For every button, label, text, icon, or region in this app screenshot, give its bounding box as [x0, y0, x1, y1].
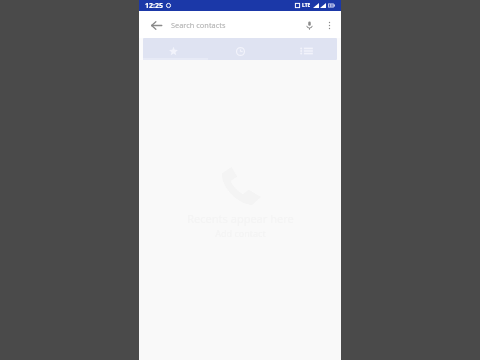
staticText: 12:25 — [145, 1, 163, 11]
button[interactable]: Speed dial — [139, 38, 207, 60]
button[interactable]: Contacts — [274, 38, 341, 60]
staticText: Search contacts — [171, 20, 226, 30]
staticText: LTE — [302, 2, 311, 9]
button[interactable]: Voice search — [302, 18, 316, 32]
button[interactable]: Back — [149, 18, 163, 32]
button[interactable]: More options — [322, 18, 336, 32]
